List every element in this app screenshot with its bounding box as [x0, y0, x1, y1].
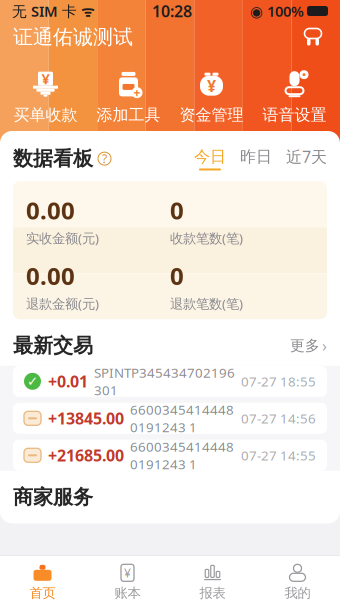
staticText: ¥ [124, 565, 131, 581]
staticText: 我的 [284, 585, 310, 601]
staticText: 昨日 [240, 147, 272, 166]
button[interactable]: 近7天 [272, 146, 327, 171]
button[interactable]: + [87, 66, 170, 129]
staticText: 07-27 18:55 [241, 372, 316, 390]
staticText: 66003454144480191243 1 [130, 401, 234, 436]
button[interactable]: 今日 [194, 147, 226, 170]
staticText: 10:28 [152, 0, 192, 22]
staticText: 退款金额(元) [26, 295, 99, 312]
staticText: 商家服务 [13, 485, 93, 509]
staticText: +13845.00 [48, 408, 124, 429]
button[interactable]: ¥ [4, 66, 87, 129]
staticText: 买单收款 [13, 105, 77, 125]
staticText: ◉ 100% [250, 1, 304, 21]
staticText: 0.00 [26, 194, 75, 226]
staticText: ✓ [27, 374, 38, 389]
button[interactable]: 首页 [0, 559, 85, 601]
staticText: 数据看板 [13, 146, 93, 171]
staticText: + [133, 85, 140, 101]
staticText: 07-27 14:55 [241, 446, 316, 464]
staticText: 报表 [199, 585, 225, 601]
staticText: ¥ [41, 69, 49, 88]
staticText: 近7天 [286, 146, 327, 167]
staticText: 收款笔数(笔) [170, 229, 243, 247]
staticText: 今日 [194, 147, 226, 166]
staticText: ᯤ [77, 1, 94, 21]
staticText: 最新交易 [13, 333, 93, 358]
staticText: +21685.00 [48, 445, 124, 466]
staticText: 资金管理 [179, 105, 243, 125]
staticText: 语音设置 [262, 105, 326, 125]
staticText: SPINTP345434702196301 [94, 364, 235, 399]
staticText: +0.01 [48, 371, 88, 392]
button[interactable]: ✓ [13, 366, 327, 397]
button[interactable]: +21685.00 [13, 440, 327, 471]
button[interactable]: ¥ [170, 66, 253, 129]
staticText: 07-27 14:56 [241, 409, 316, 427]
button[interactable]: 昨日 [226, 147, 272, 170]
staticText: 更多 [290, 336, 320, 354]
staticText: 首页 [29, 585, 55, 601]
button[interactable]: 我的 [255, 559, 340, 601]
staticText: ? [102, 151, 107, 167]
button[interactable]: 说明 [93, 152, 111, 165]
staticText: 添加工具 [96, 105, 160, 125]
button[interactable]: 更多 [290, 335, 327, 356]
staticText: 账本 [114, 585, 140, 601]
staticText: 66003454144480191243 1 [130, 438, 234, 473]
staticText: 0 [170, 260, 184, 292]
staticText: ¥ [207, 75, 216, 96]
staticText: 0 [170, 194, 184, 226]
button[interactable]: ¥ [85, 559, 170, 601]
button[interactable]: 客服 [299, 24, 327, 50]
button[interactable]: 报表 [170, 559, 255, 601]
staticText: 实收金额(元) [26, 229, 99, 247]
staticText: › [322, 335, 327, 356]
staticText: 退款笔数(笔) [170, 295, 243, 312]
button[interactable]: 语音设置 [253, 66, 336, 129]
button[interactable]: +13845.00 [13, 403, 327, 434]
staticText: 证通佑诚测试 [13, 25, 133, 49]
staticText: 0.00 [26, 260, 75, 292]
staticText: 无 SIM 卡 [12, 1, 77, 21]
